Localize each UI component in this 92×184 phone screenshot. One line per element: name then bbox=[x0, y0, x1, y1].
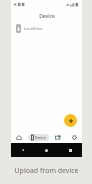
button[interactable]: Back bbox=[11, 143, 34, 157]
staticText: Device bbox=[35, 135, 46, 140]
button[interactable]: Recent apps bbox=[58, 143, 82, 157]
button[interactable]: Settings bbox=[66, 131, 82, 143]
staticText: Device bbox=[39, 13, 55, 20]
button[interactable]: Device bbox=[26, 131, 50, 143]
button[interactable]: Shared bbox=[50, 131, 66, 143]
staticText: Upload from device bbox=[14, 166, 79, 176]
button[interactable]: Home bbox=[11, 131, 26, 143]
button[interactable]: LocalHost bbox=[11, 23, 82, 34]
staticText: LocalHost bbox=[24, 26, 43, 31]
button[interactable]: Add bbox=[64, 114, 77, 127]
button[interactable]: Home bbox=[34, 143, 58, 157]
